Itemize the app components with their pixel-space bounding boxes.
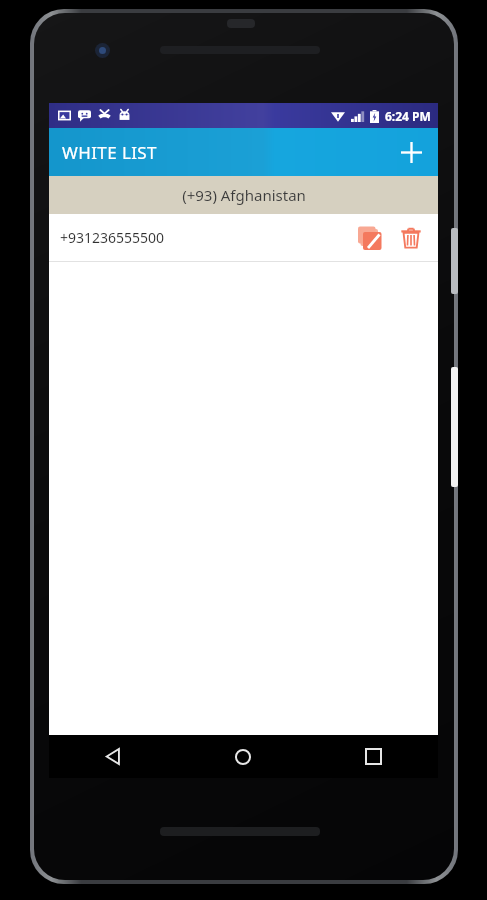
button[interactable]: Home	[178, 735, 308, 778]
staticText: WHITE LIST	[62, 141, 157, 164]
button[interactable]: (+93) Afghanistan	[49, 176, 438, 214]
staticText: +931236555500	[60, 228, 348, 247]
button[interactable]: Edit	[348, 216, 392, 260]
button[interactable]: Recent apps	[308, 735, 438, 778]
button[interactable]: Back	[49, 735, 178, 778]
button[interactable]: Delete	[392, 216, 430, 260]
button[interactable]: Add number	[390, 131, 432, 173]
staticText: (+93) Afghanistan	[182, 185, 306, 205]
button[interactable]: +931236555500	[49, 214, 438, 261]
staticText: 6:24 PM	[385, 108, 431, 124]
